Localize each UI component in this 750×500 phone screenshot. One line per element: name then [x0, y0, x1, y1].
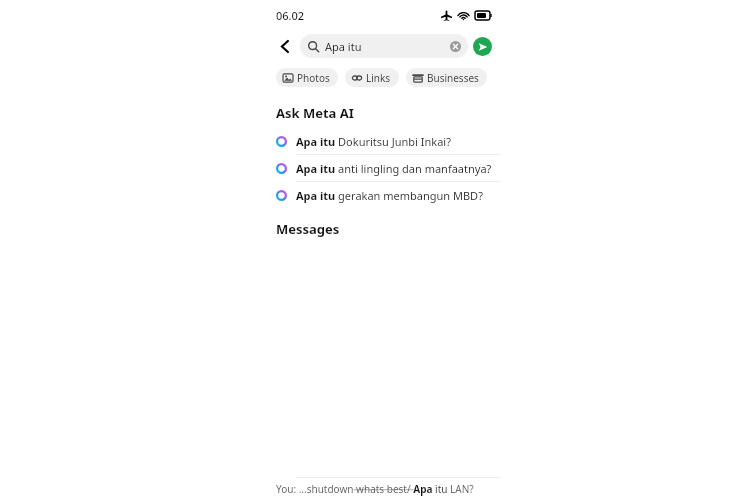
button[interactable]: Send — [473, 37, 492, 56]
staticText: Apa itu anti lingling dan manfaatnya? — [296, 161, 492, 176]
staticText: Apa itu — [325, 39, 362, 54]
button[interactable]: Businesses — [406, 68, 487, 87]
staticText: Apa itu Dokuritsu Junbi Inkai? — [296, 134, 451, 149]
staticText: You: ...shutdown whats best/ Apa itu LAN… — [276, 482, 474, 496]
button[interactable]: Back — [274, 35, 296, 57]
staticText: Photos — [297, 71, 330, 85]
button[interactable]: You: ...shutdown whats best/ Apa itu LAN… — [270, 478, 500, 500]
staticText: 06.02 — [276, 8, 305, 23]
staticText: Apa itu gerakan membangun MBD? — [296, 188, 483, 203]
button[interactable]: Apa itu Dokuritsu Junbi Inkai? — [270, 128, 500, 154]
staticText: Businesses — [427, 71, 479, 85]
staticText: Links — [366, 71, 391, 85]
button[interactable]: Photos — [276, 68, 338, 87]
button[interactable]: Apa itu gerakan membangun MBD? — [270, 182, 500, 208]
button[interactable]: Apa itu — [300, 34, 468, 58]
button[interactable]: Links — [345, 68, 399, 87]
button[interactable]: Clear — [450, 41, 461, 52]
button[interactable]: Apa itu anti lingling dan manfaatnya? — [270, 155, 500, 181]
staticText: Ask Meta AI — [276, 104, 354, 122]
staticText: Messages — [276, 220, 340, 238]
